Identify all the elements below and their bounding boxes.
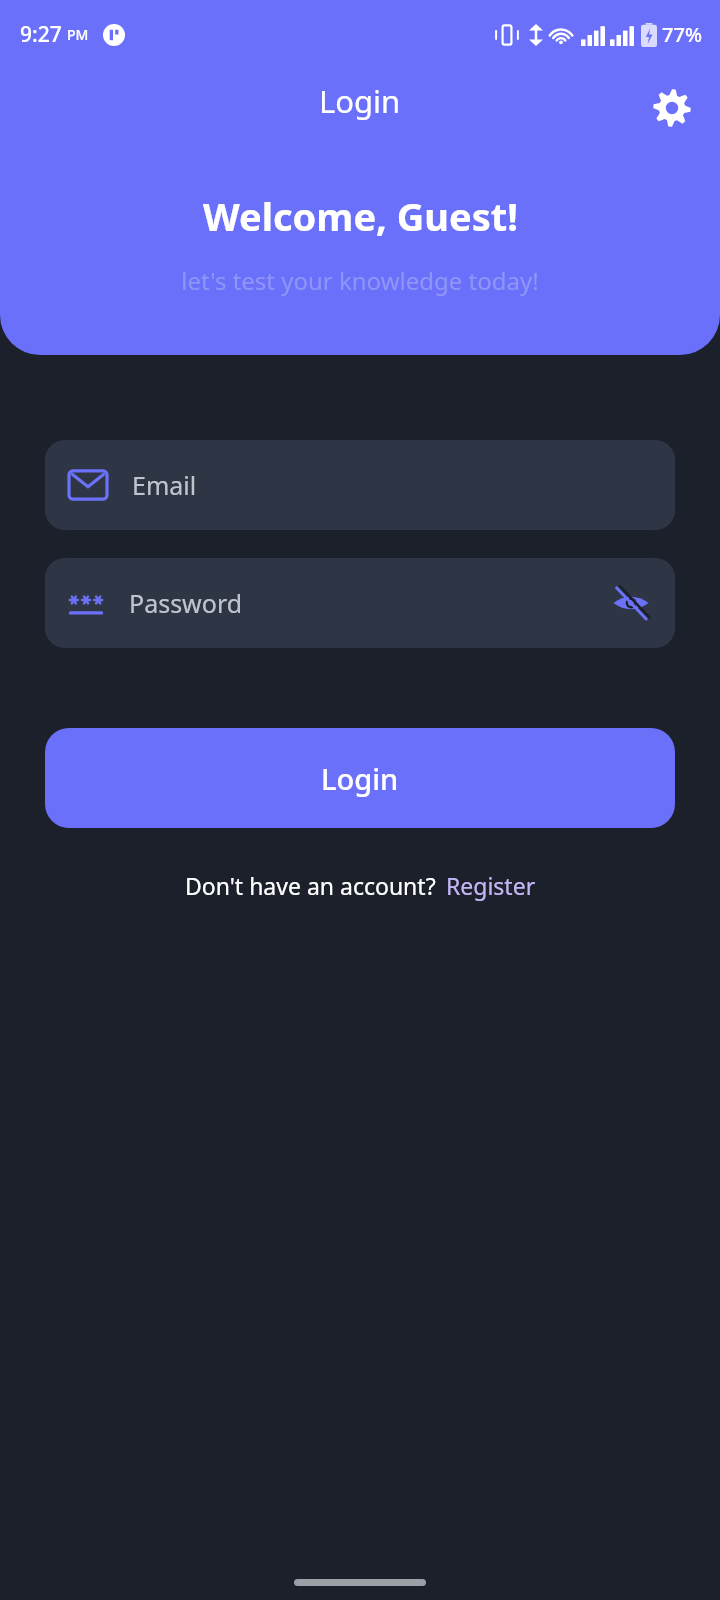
- staticText: Password: [129, 586, 243, 620]
- staticText: PM: [67, 25, 89, 44]
- staticText: Welcome, Guest!: [203, 190, 518, 242]
- button[interactable]: Email: [45, 440, 675, 530]
- staticText: Login: [321, 759, 399, 798]
- staticText: 9:27: [20, 20, 62, 49]
- staticText: 77%: [662, 21, 702, 48]
- staticText: Register: [446, 870, 536, 901]
- button[interactable]: Login: [45, 728, 675, 828]
- button[interactable]: Register: [446, 870, 536, 901]
- button[interactable]: Show password: [607, 579, 655, 627]
- staticText: Login: [319, 80, 401, 122]
- staticText: Don't have an account?: [185, 870, 436, 901]
- staticText: Email: [132, 468, 197, 502]
- staticText: let's test your knowledge today!: [181, 264, 539, 297]
- button[interactable]: Password: [45, 558, 675, 648]
- button[interactable]: Settings: [646, 82, 698, 134]
